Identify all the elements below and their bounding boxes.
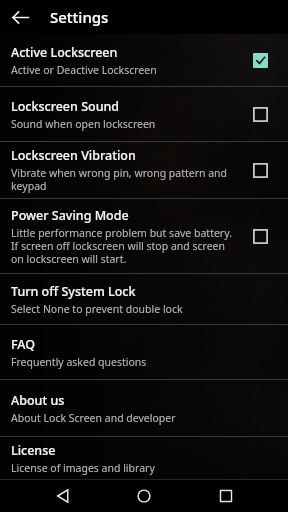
staticText: Turn off System Lock bbox=[11, 283, 136, 300]
staticText: Lockscreen Vibration bbox=[11, 147, 136, 164]
button[interactable]: FAQ bbox=[0, 325, 288, 379]
staticText: Power Saving Mode bbox=[11, 207, 129, 224]
button[interactable]: About us bbox=[0, 380, 288, 436]
staticText: Settings bbox=[50, 7, 109, 27]
button[interactable]: Lockscreen Sound bbox=[0, 87, 288, 141]
button[interactable]: Active Lockscreen bbox=[245, 45, 275, 75]
staticText: License bbox=[11, 442, 56, 459]
staticText: About Lock Screen and developer bbox=[11, 411, 176, 425]
staticText: Sound when open lockscreen bbox=[11, 117, 156, 131]
staticText: Little performance problem but save batt… bbox=[11, 226, 237, 266]
staticText: Active or Deactive Lockscreen bbox=[11, 63, 157, 77]
staticText: FAQ bbox=[11, 336, 36, 353]
button[interactable]: Back bbox=[44, 479, 82, 512]
button[interactable]: License bbox=[0, 437, 288, 479]
staticText: Active Lockscreen bbox=[11, 44, 118, 61]
button[interactable]: Turn off System Lock bbox=[0, 274, 288, 324]
button[interactable]: Home bbox=[125, 479, 163, 512]
staticText: Frequently asked questions bbox=[11, 355, 147, 369]
button[interactable]: Recent apps bbox=[207, 479, 245, 512]
button[interactable]: Active Lockscreen bbox=[0, 34, 288, 86]
button[interactable]: Lockscreen Vibration bbox=[245, 155, 275, 185]
staticText: About us bbox=[11, 392, 65, 409]
staticText: Lockscreen Sound bbox=[11, 98, 120, 115]
staticText: License of images and library bbox=[11, 461, 155, 475]
button[interactable]: Power Saving Mode bbox=[0, 199, 288, 273]
staticText: Vibrate when wrong pin, wrong pattern an… bbox=[11, 166, 237, 193]
button[interactable]: Back bbox=[6, 3, 34, 31]
button[interactable]: Lockscreen Sound bbox=[245, 99, 275, 129]
staticText: Select None to prevent double lock bbox=[11, 302, 183, 316]
button[interactable]: Power Saving Mode bbox=[245, 221, 275, 251]
button[interactable]: Lockscreen Vibration bbox=[0, 142, 288, 198]
